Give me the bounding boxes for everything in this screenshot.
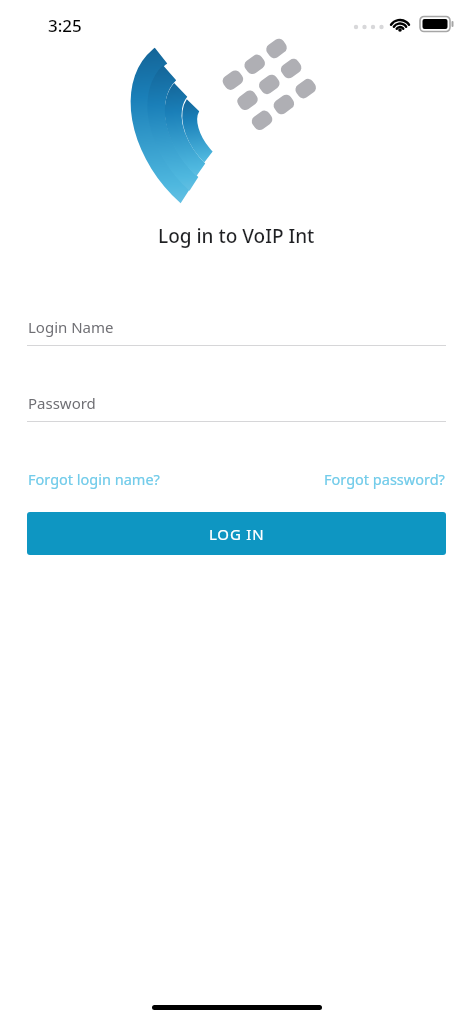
staticText: 3:25 (48, 14, 82, 37)
staticText: Forgot login name? (28, 469, 160, 489)
button[interactable]: Forgot login name? (28, 469, 160, 489)
staticText: Forgot password? (324, 469, 445, 489)
staticText: Log in to VoIP Int (158, 223, 315, 249)
button[interactable]: Login Name (0, 317, 473, 353)
staticText: LOG IN (209, 524, 265, 544)
staticText: Password (28, 393, 96, 413)
button[interactable]: Forgot password? (324, 469, 445, 489)
staticText: Login Name (28, 317, 114, 337)
other: VoIP Int logo (161, 42, 313, 198)
button[interactable]: Password (0, 393, 473, 429)
button[interactable]: LOG IN (27, 512, 446, 555)
